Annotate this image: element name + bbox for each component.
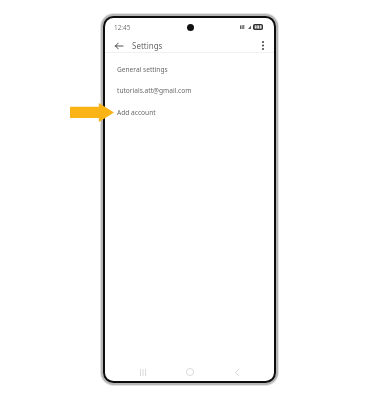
button[interactable]: Add account (105, 102, 274, 123)
staticText: Settings (132, 40, 163, 51)
button[interactable]: Home (182, 364, 198, 380)
staticText: tutorials.att@gmail.com (117, 86, 192, 95)
button[interactable]: tutorials.att@gmail.com (105, 80, 274, 101)
button[interactable]: General settings (105, 59, 274, 80)
staticText: Add account (117, 108, 156, 117)
button[interactable]: Back (112, 39, 126, 52)
other: Pointer arrow (70, 103, 114, 122)
button[interactable]: More options (256, 39, 269, 52)
button[interactable]: Back (229, 364, 245, 380)
staticText: 12:45 (114, 23, 131, 32)
staticText: General settings (117, 65, 168, 74)
button[interactable]: Recent apps (135, 364, 151, 380)
